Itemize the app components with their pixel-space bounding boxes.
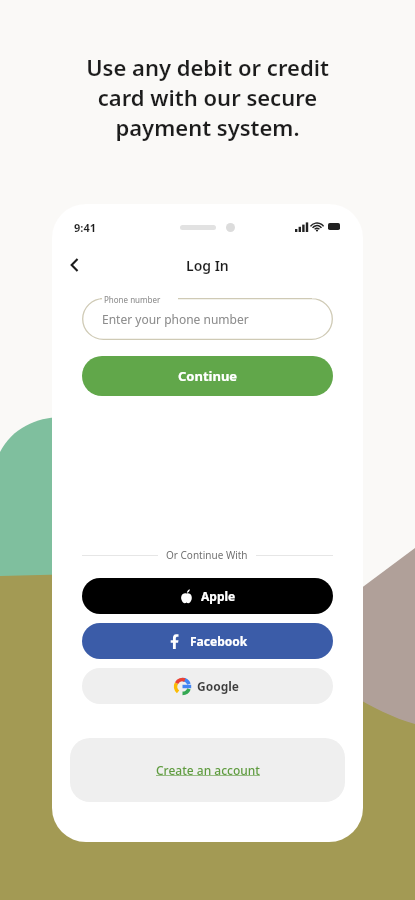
staticText: Enter your phone number: [102, 311, 249, 327]
staticText: Use any debit or credit card with our se…: [0, 52, 415, 142]
staticText: Google: [197, 678, 240, 694]
button[interactable]: Create an account: [70, 738, 345, 802]
staticText: Continue: [178, 367, 238, 385]
button[interactable]: Google: [82, 668, 333, 704]
staticText: Log In: [186, 256, 229, 275]
button[interactable]: Continue: [82, 356, 333, 396]
staticText: Phone number: [104, 294, 161, 305]
staticText: Apple: [201, 588, 236, 604]
staticText: Create an account: [156, 762, 260, 778]
staticText: Or Continue With: [166, 548, 248, 562]
button[interactable]: Apple: [82, 578, 333, 614]
button[interactable]: Facebook: [82, 623, 333, 659]
staticText: Facebook: [190, 633, 248, 649]
button[interactable]: Back: [60, 252, 90, 278]
staticText: 9:41: [74, 220, 96, 235]
